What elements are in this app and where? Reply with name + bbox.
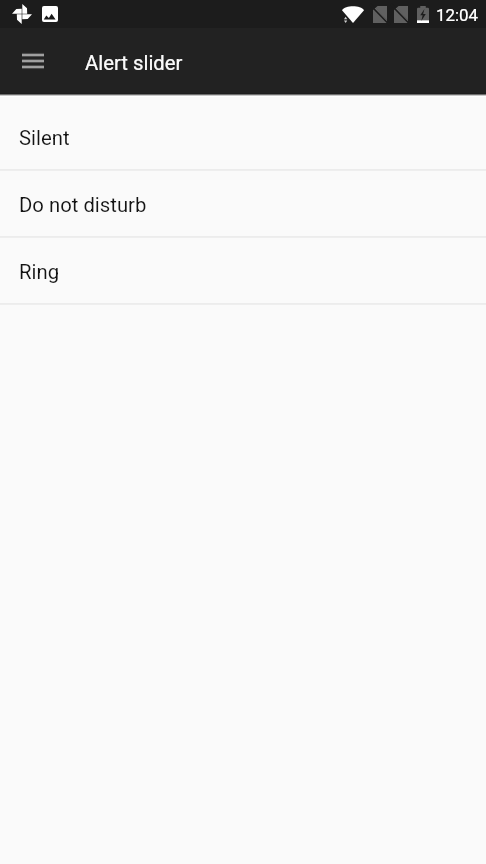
- staticText: Ring: [19, 260, 60, 284]
- staticText: 12:04: [436, 5, 479, 25]
- button[interactable]: Ring: [0, 238, 486, 303]
- staticText: Silent: [19, 126, 70, 150]
- button[interactable]: Open navigation drawer: [10, 38, 56, 84]
- button[interactable]: Silent: [0, 104, 486, 169]
- button[interactable]: Do not disturb: [0, 171, 486, 236]
- staticText: Do not disturb: [19, 193, 147, 217]
- staticText: Alert slider: [85, 51, 183, 75]
